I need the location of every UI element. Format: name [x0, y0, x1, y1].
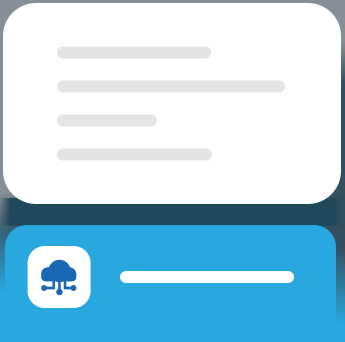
button[interactable]: Cloud service: [5, 225, 336, 342]
